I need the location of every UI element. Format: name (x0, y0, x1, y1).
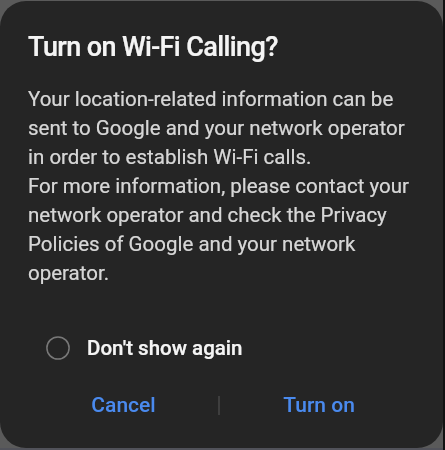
staticText: Turn on (283, 393, 355, 418)
button[interactable]: Don't show again (0, 328, 443, 368)
staticText: Cancel (91, 393, 156, 418)
staticText: Don't show again (87, 336, 243, 360)
staticText: Your location-related information can be… (28, 87, 409, 285)
button[interactable]: Turn on (219, 383, 443, 427)
staticText: Turn on Wi-Fi Calling? (28, 31, 278, 63)
button[interactable]: Cancel (0, 383, 219, 427)
